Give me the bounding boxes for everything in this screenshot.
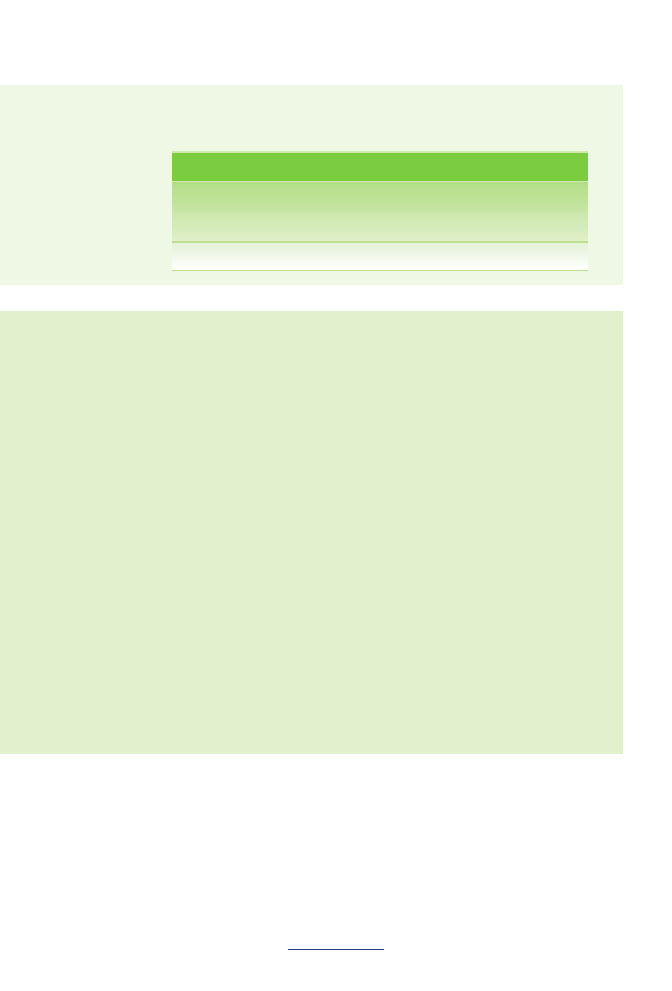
button[interactable]: Row 2 [172, 211, 588, 241]
button[interactable]: Row 3 [172, 241, 588, 270]
button[interactable]: Row 1 [172, 181, 588, 211]
button[interactable]: Table header [172, 151, 588, 181]
